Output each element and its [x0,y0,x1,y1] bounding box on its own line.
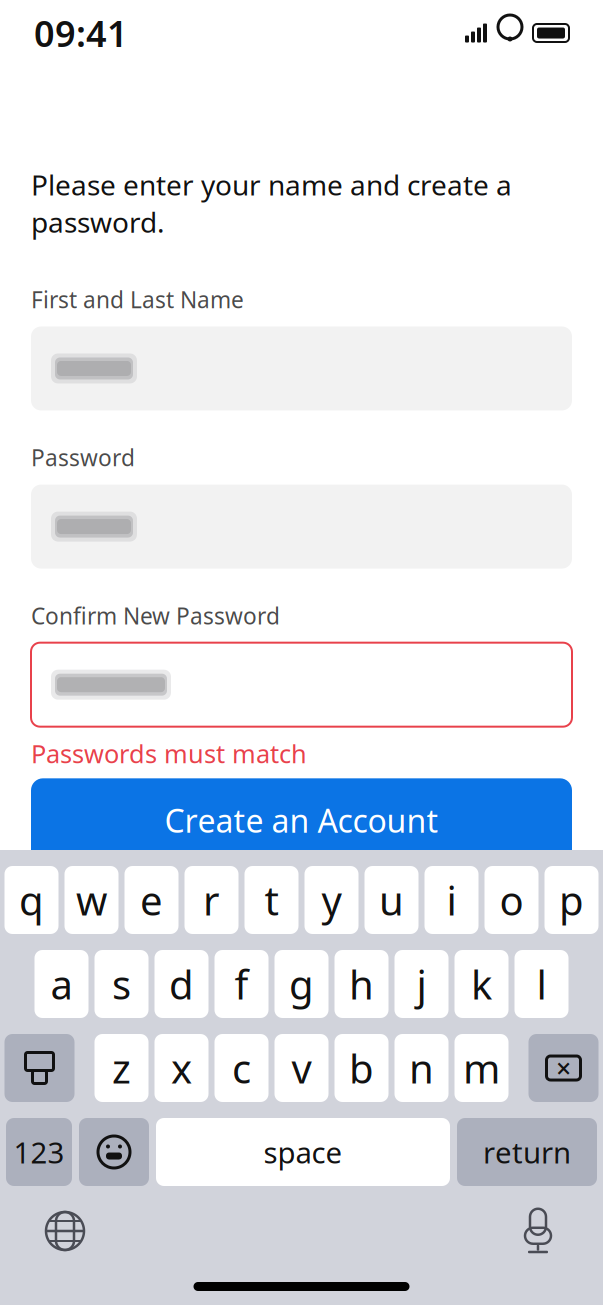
button[interactable]: q [4,866,58,934]
button[interactable]: Create an Account [31,778,572,862]
button[interactable]: s [94,950,148,1018]
staticText: g [289,957,314,1010]
button[interactable]: w [64,866,118,934]
staticText: s [112,957,131,1010]
button[interactable]: j [394,950,448,1018]
staticText: l [536,957,546,1010]
staticText: 123 [13,1132,64,1171]
button[interactable] [31,326,572,410]
staticText: n [409,1041,434,1094]
staticText: b [349,1041,374,1094]
button[interactable]: Delete [528,1034,598,1102]
button[interactable]: p [544,866,598,934]
staticText: First and Last Name [31,284,244,314]
button[interactable]: e [124,866,178,934]
staticText: space [263,1132,342,1171]
button[interactable]: d [154,950,208,1018]
button[interactable]: u [364,866,418,934]
button[interactable]: Shift [4,1034,74,1102]
button[interactable]: z [94,1034,148,1102]
button[interactable]: return [457,1118,597,1186]
button[interactable]: v [274,1034,328,1102]
staticText: e [140,873,163,926]
staticText: Password [31,442,135,473]
button[interactable]: m [454,1034,508,1102]
button[interactable] [31,643,572,727]
staticText: x [171,1041,192,1094]
staticText: Please enter your name and create a pass… [31,166,512,240]
staticText: r [203,873,220,926]
button[interactable]: 123 [6,1118,72,1186]
staticText: y [321,873,341,926]
button[interactable]: l [514,950,568,1018]
staticText: c [232,1041,251,1094]
button[interactable]: a [34,950,88,1018]
button[interactable]: b [334,1034,388,1102]
staticText: z [112,1041,131,1094]
staticText: t [264,873,278,926]
button[interactable]: o [484,866,538,934]
button[interactable]: Emoji [79,1118,149,1186]
staticText: k [471,957,492,1010]
button[interactable]: f [214,950,268,1018]
button[interactable]: r [184,866,238,934]
button[interactable]: space [156,1118,450,1186]
staticText: Confirm New Password [31,601,280,631]
staticText: Passwords must match [31,737,307,770]
button[interactable]: i [424,866,478,934]
staticText: a [50,957,72,1010]
staticText: f [234,957,248,1010]
button[interactable]: y [304,866,358,934]
button[interactable]: n [394,1034,448,1102]
staticText: q [19,873,44,926]
staticText: i [446,873,456,926]
staticText: Create an Account [164,799,438,842]
staticText: p [559,873,584,926]
staticText: m [463,1041,500,1094]
button[interactable] [31,485,572,569]
staticText: j [416,957,426,1010]
button[interactable]: Change keyboard language [42,1208,88,1254]
staticText: u [379,873,404,926]
button[interactable]: c [214,1034,268,1102]
button[interactable]: h [334,950,388,1018]
staticText: d [169,957,194,1010]
button[interactable]: t [244,866,298,934]
staticText: 09:41 [34,9,128,57]
staticText: h [349,957,374,1010]
staticText: v [291,1041,311,1094]
staticText: o [499,873,523,926]
button[interactable]: k [454,950,508,1018]
staticText: return [483,1132,571,1171]
button[interactable]: Dictate [515,1206,561,1256]
button[interactable]: x [154,1034,208,1102]
staticText: × [556,1050,571,1086]
button[interactable]: g [274,950,328,1018]
staticText: w [76,873,107,926]
